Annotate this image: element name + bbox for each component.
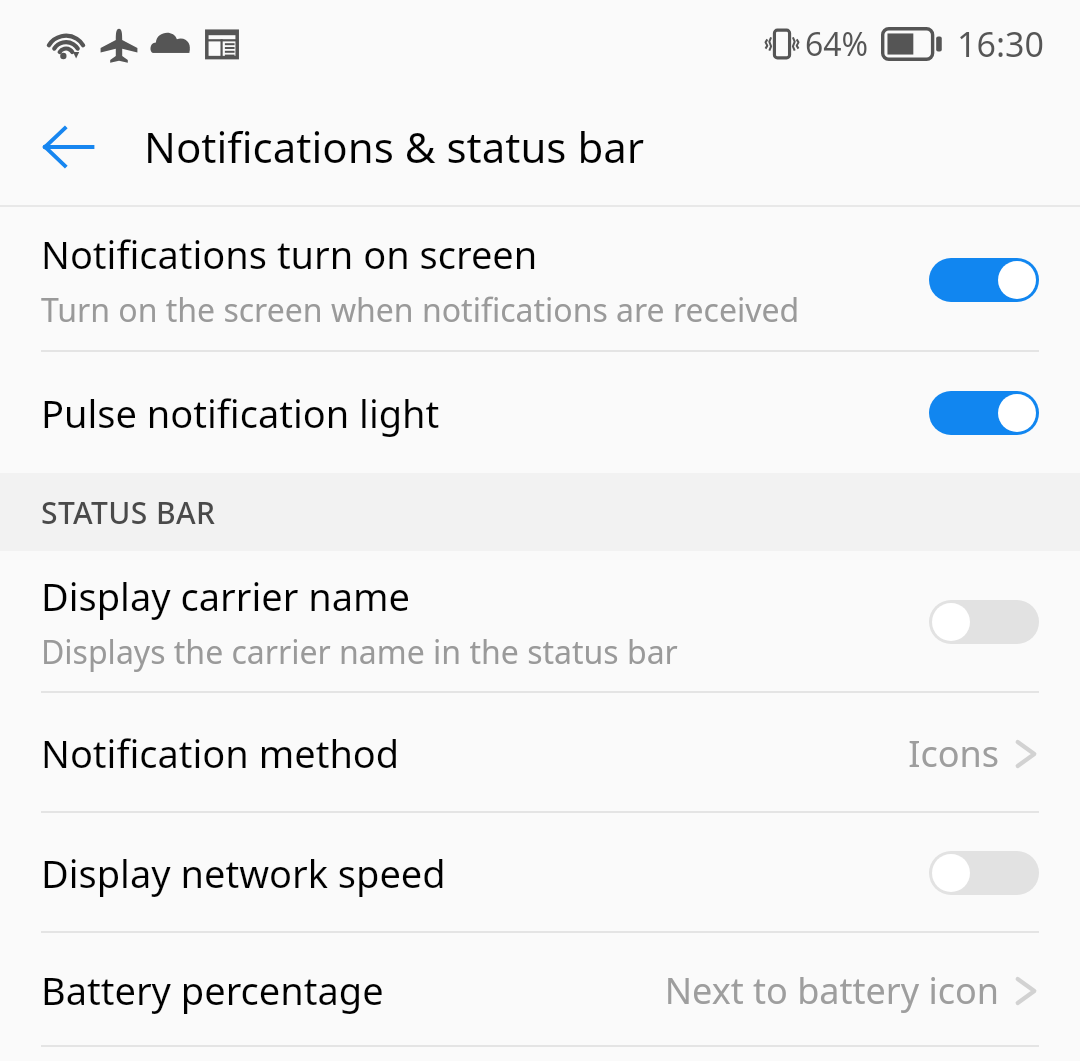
button[interactable] (929, 851, 1039, 895)
staticText: Display network speed (41, 847, 446, 899)
button[interactable]: Display carrier name (0, 551, 1080, 693)
button[interactable]: Back (24, 103, 112, 191)
staticText: STATUS BAR (41, 492, 216, 533)
staticText: Turn on the screen when notifications ar… (41, 288, 800, 332)
button[interactable]: Battery percentage (0, 933, 1080, 1047)
button[interactable] (929, 258, 1039, 302)
staticText: 16:30 (957, 21, 1044, 67)
button[interactable]: Notifications turn on screen (0, 207, 1080, 352)
staticText: Icons (908, 729, 999, 778)
staticText: Notification method (41, 727, 400, 779)
button[interactable]: Pulse notification light (0, 352, 1080, 473)
staticText: Notifications turn on screen (41, 228, 538, 280)
button[interactable] (929, 600, 1039, 644)
button[interactable]: Notification method (0, 693, 1080, 813)
staticText: Battery percentage (41, 964, 384, 1016)
staticText: Display carrier name (41, 570, 411, 622)
staticText: 64% (805, 22, 869, 66)
staticText: Pulse notification light (41, 387, 440, 439)
staticText: Next to battery icon (664, 966, 999, 1015)
staticText: Notifications & status bar (144, 118, 645, 175)
button[interactable] (929, 391, 1039, 435)
staticText: Displays the carrier name in the status … (41, 630, 678, 674)
button[interactable]: Display network speed (0, 813, 1080, 933)
